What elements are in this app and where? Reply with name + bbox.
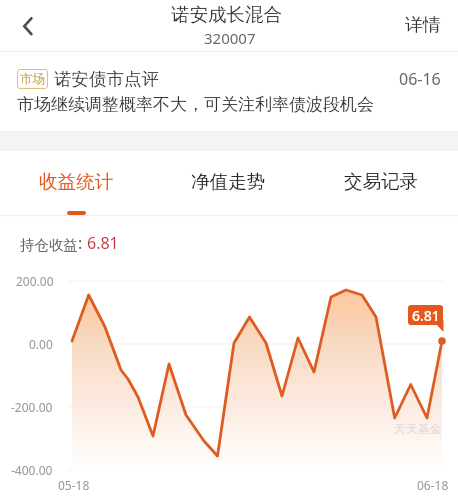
staticText: 06-16: [399, 68, 441, 90]
staticText: 收益统计: [39, 170, 114, 193]
staticText: 交易记录: [344, 170, 419, 193]
staticText: 200.00: [16, 273, 54, 289]
staticText: 320007: [204, 28, 256, 48]
staticText: 06-18: [417, 477, 449, 493]
staticText: 6.81: [87, 232, 119, 254]
staticText: 净值走势: [191, 170, 266, 193]
button[interactable]: 详情: [405, 0, 441, 51]
button[interactable]: Back: [0, 0, 52, 51]
staticText: -200.00: [11, 399, 53, 415]
staticText: :: [78, 232, 87, 254]
button[interactable]: 市场: [0, 52, 458, 115]
staticText: 持仓收益: [20, 236, 78, 254]
staticText: 0.00: [29, 336, 53, 352]
staticText: 05-18: [58, 477, 90, 493]
staticText: 市场: [20, 71, 45, 87]
button[interactable]: 交易记录: [305, 151, 458, 215]
button[interactable]: 净值走势: [152, 151, 305, 215]
staticText: 6.81: [412, 306, 440, 325]
staticText: 诺安成长混合: [171, 3, 282, 26]
staticText: -400.00: [11, 462, 53, 478]
staticText: 详情: [405, 14, 441, 37]
staticText: 市场继续调整概率不大，可关注利率债波段机会: [17, 94, 374, 115]
staticText: 天天基金: [394, 421, 442, 436]
button[interactable]: 收益统计: [0, 151, 152, 215]
staticText: 诺安债市点评: [54, 68, 159, 90]
